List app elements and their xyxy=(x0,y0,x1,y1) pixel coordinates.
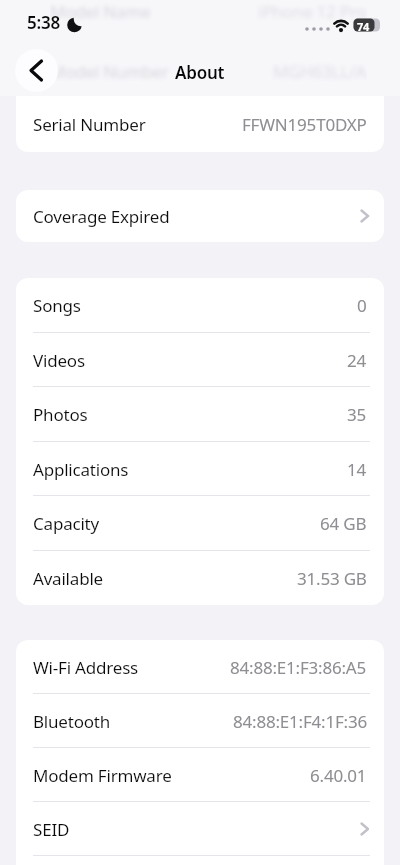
staticText: About xyxy=(175,61,225,84)
staticText: 84:88:E1:F3:86:A5 xyxy=(230,656,367,679)
button[interactable]: Bluetooth xyxy=(16,694,384,748)
staticText: MGH63LL/A xyxy=(273,60,367,83)
staticText: Model Number xyxy=(50,60,169,83)
staticText: 74 xyxy=(357,19,370,34)
button[interactable]: Songs xyxy=(16,278,384,333)
button[interactable]: Capacity xyxy=(16,496,384,551)
staticText: iPhone 12 Pro xyxy=(258,0,367,23)
button[interactable]: Wi-Fi Address xyxy=(16,640,384,694)
button[interactable]: Photos xyxy=(16,387,384,442)
button[interactable]: Modem Firmware xyxy=(16,748,384,802)
staticText: 35 xyxy=(347,403,367,426)
staticText: Model Name xyxy=(50,0,151,23)
staticText: 84:88:E1:F4:1F:36 xyxy=(233,710,367,733)
button[interactable]: SEID xyxy=(16,802,384,856)
staticText: Coverage Expired xyxy=(33,205,170,228)
staticText: Bluetooth xyxy=(33,710,111,733)
staticText: 5:38 xyxy=(27,11,61,34)
staticText: 24 xyxy=(347,349,367,372)
button[interactable]: Available xyxy=(16,551,384,605)
staticText: Serial Number xyxy=(33,113,146,136)
staticText: 64 GB xyxy=(320,512,367,535)
staticText: Applications xyxy=(33,458,129,481)
staticText: 14 xyxy=(347,458,367,481)
staticText: Songs xyxy=(33,294,81,317)
button[interactable]: Applications xyxy=(16,442,384,496)
staticText: Available xyxy=(33,567,103,590)
staticText: 6.40.01 xyxy=(310,764,367,787)
staticText: Modem Firmware xyxy=(33,764,172,787)
staticText: Capacity xyxy=(33,512,100,535)
staticText: 31.53 GB xyxy=(297,567,367,590)
staticText: Videos xyxy=(33,349,85,372)
button[interactable] xyxy=(15,49,58,92)
button[interactable]: Videos xyxy=(16,333,384,387)
staticText: SEID xyxy=(33,818,70,841)
button[interactable]: Serial Number xyxy=(16,96,384,152)
staticText: 0 xyxy=(357,294,367,317)
staticText: FFWN195T0DXP xyxy=(242,113,367,136)
staticText: Wi-Fi Address xyxy=(33,656,139,679)
button[interactable]: Coverage Expired xyxy=(16,190,384,242)
staticText: Photos xyxy=(33,403,88,426)
